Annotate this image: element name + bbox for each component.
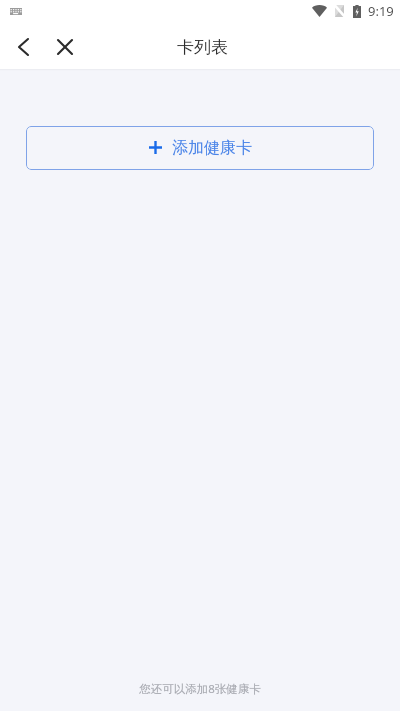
button[interactable]: 添加健康卡 — [26, 126, 374, 170]
staticText: 您还可以添加8张健康卡 — [139, 681, 261, 697]
button[interactable]: Close — [48, 30, 82, 64]
staticText: 添加健康卡 — [172, 138, 252, 158]
button[interactable]: Back — [7, 31, 39, 63]
staticText: 卡列表 — [177, 37, 228, 58]
staticText: 9:19 — [368, 2, 394, 20]
